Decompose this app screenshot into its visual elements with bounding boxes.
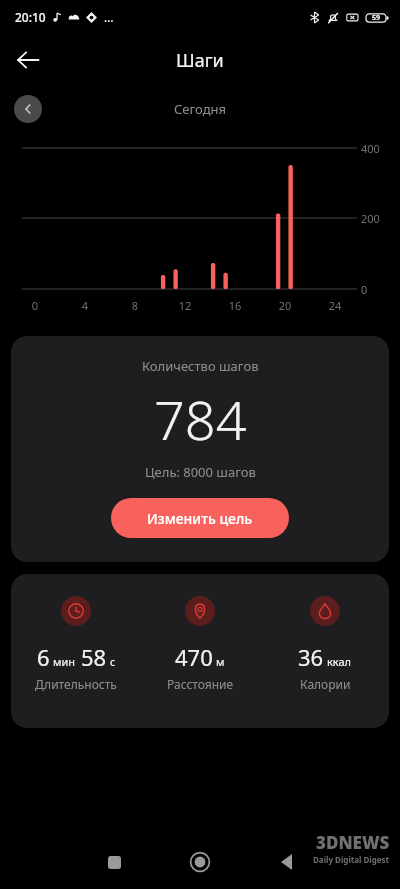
staticText: 0	[361, 282, 368, 297]
staticText: Изменить цель	[147, 509, 253, 528]
staticText: мин	[53, 654, 76, 669]
staticText: ккал	[327, 654, 352, 669]
staticText: Цель: 8000 шагов	[145, 463, 256, 481]
button[interactable]: 6	[16, 596, 136, 692]
staticText: с	[110, 654, 116, 669]
staticText: 3DNEWS	[316, 831, 390, 854]
staticText: 20	[275, 298, 295, 313]
staticText: 6	[37, 642, 50, 672]
staticText: 400	[361, 141, 380, 156]
button[interactable]: Предыдущий день	[14, 95, 42, 123]
staticText: 4	[75, 298, 95, 313]
staticText: Количество шагов	[142, 357, 259, 375]
staticText: 58	[81, 642, 107, 672]
staticText: Daily Digital Digest	[313, 854, 390, 865]
staticText: 20:10	[15, 9, 46, 25]
staticText: 36	[298, 642, 324, 672]
staticText: 59	[372, 13, 381, 23]
staticText: 470	[175, 642, 213, 672]
staticText: 16	[225, 298, 245, 313]
button[interactable]: 36	[265, 596, 385, 692]
staticText: Расстояние	[167, 676, 234, 692]
staticText: 0	[25, 298, 45, 313]
staticText: Длительность	[35, 676, 117, 692]
staticText: м	[216, 654, 225, 669]
staticText: 784	[154, 382, 247, 456]
button[interactable]: Изменить цель	[111, 498, 289, 538]
staticText: Шаги	[176, 48, 224, 73]
staticText: Сегодня	[174, 100, 227, 118]
staticText: Калории	[300, 676, 351, 692]
button[interactable]: Обзор	[94, 842, 134, 882]
button[interactable]: 470	[140, 596, 260, 692]
staticText: 200	[361, 211, 380, 226]
button[interactable]: Домой	[179, 841, 221, 883]
staticText: 8	[125, 298, 145, 313]
button[interactable]: Назад	[266, 842, 306, 882]
button[interactable]: Назад	[6, 38, 50, 82]
staticText: 12	[175, 298, 195, 313]
staticText: …	[104, 9, 114, 25]
staticText: 24	[325, 298, 345, 313]
